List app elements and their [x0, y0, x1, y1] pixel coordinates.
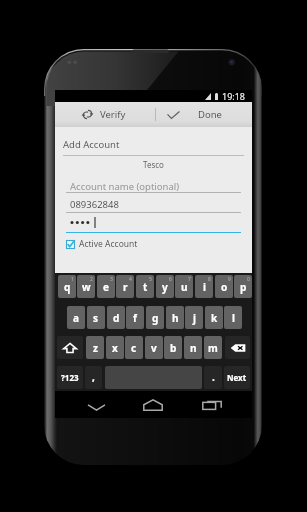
staticText: 8 [208, 276, 211, 283]
button[interactable]: w [77, 275, 95, 298]
staticText: x [112, 341, 118, 355]
staticText: b [170, 341, 177, 355]
staticText: m [208, 341, 218, 355]
button[interactable]: Home [137, 391, 168, 418]
staticText: 9 [228, 276, 231, 283]
button[interactable]: t [136, 275, 154, 298]
button[interactable]: Shift [57, 336, 83, 359]
staticText: q [64, 280, 71, 294]
button[interactable]: Verify [55, 102, 155, 127]
button[interactable]: ?123 [57, 366, 83, 389]
staticText: p [240, 280, 247, 294]
staticText: e [103, 280, 109, 294]
staticText: 5 [149, 276, 152, 283]
button[interactable]: Hide keyboard [81, 394, 112, 421]
button[interactable]: u [175, 275, 193, 298]
staticText: r [123, 280, 128, 294]
button[interactable]: o [215, 275, 233, 298]
staticText: u [181, 280, 188, 294]
staticText: y [162, 280, 168, 294]
button[interactable]: , [85, 366, 102, 389]
button[interactable]: k [205, 306, 223, 329]
staticText: 19:18 [222, 90, 246, 102]
button[interactable]: l [224, 306, 242, 329]
button[interactable]: g [146, 306, 164, 329]
button[interactable]: b [164, 336, 182, 359]
button[interactable]: n [184, 336, 202, 359]
button[interactable]: a [67, 306, 85, 329]
button[interactable]: Backspace [225, 336, 250, 359]
staticText: Active Account [79, 238, 138, 250]
staticText: w [82, 280, 91, 294]
staticText: Verify [100, 108, 126, 121]
button[interactable]: z [86, 336, 104, 359]
button[interactable]: i [195, 275, 213, 298]
staticText: c [131, 341, 137, 355]
button[interactable]: j [185, 306, 203, 329]
button[interactable]: s [87, 306, 105, 329]
staticText: ?123 [61, 372, 79, 383]
staticText: o [221, 280, 228, 294]
button[interactable]: m [204, 336, 222, 359]
staticText: s [93, 311, 99, 325]
staticText: 4 [129, 276, 132, 283]
staticText: 089362848 [70, 198, 119, 211]
button[interactable]: y [156, 275, 174, 298]
staticText: t [143, 280, 148, 294]
staticText: l [232, 311, 235, 325]
staticText: 6 [169, 276, 172, 283]
staticText: . [212, 370, 215, 384]
staticText: f [133, 311, 137, 325]
staticText: i [203, 280, 206, 294]
staticText: v [151, 341, 157, 355]
staticText: Account name (optional) [70, 180, 180, 193]
button[interactable]: x [106, 336, 124, 359]
staticText: j [193, 311, 196, 325]
button[interactable]: . [204, 366, 222, 389]
button[interactable]: Active Account [66, 238, 138, 250]
staticText: Next [227, 372, 247, 383]
button[interactable]: q [58, 275, 76, 298]
button[interactable]: Add Account [63, 138, 120, 151]
staticText: 1 [71, 276, 74, 283]
button[interactable]: h [166, 306, 184, 329]
staticText: d [113, 311, 120, 325]
staticText: z [93, 341, 98, 355]
staticText: k [211, 311, 218, 325]
button[interactable]: v [145, 336, 163, 359]
button[interactable]: d [107, 306, 125, 329]
button[interactable]: f [126, 306, 144, 329]
button[interactable]: Recent apps [196, 391, 227, 418]
staticText: Done [198, 108, 222, 121]
staticText: n [190, 341, 197, 355]
button[interactable]: r [116, 275, 134, 298]
button[interactable]: Done [156, 102, 252, 127]
staticText: Tesco [143, 159, 164, 170]
button[interactable]: p [234, 275, 252, 298]
staticText: , [92, 370, 95, 384]
button[interactable]: c [125, 336, 143, 359]
button[interactable]: Next [224, 366, 250, 389]
staticText: h [172, 311, 179, 325]
staticText: 0 [247, 276, 250, 283]
staticText: 2 [90, 276, 93, 283]
staticText: g [152, 311, 159, 325]
button[interactable]: e [97, 275, 115, 298]
staticText: 3 [110, 276, 113, 283]
staticText: 7 [188, 276, 191, 283]
staticText: a [73, 311, 79, 325]
